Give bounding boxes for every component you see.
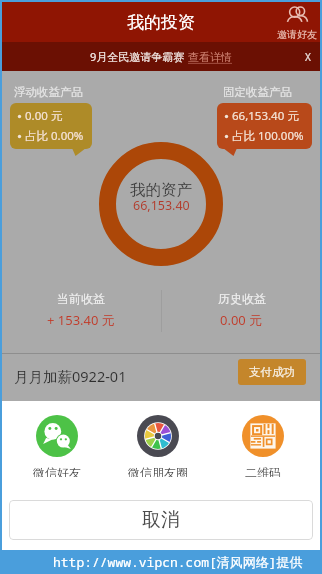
button[interactable]: 微信好友 bbox=[20, 415, 94, 477]
staticText: 浮动收益产品 bbox=[14, 85, 83, 99]
staticText: X bbox=[305, 50, 311, 64]
staticText: 二维码 bbox=[245, 465, 281, 477]
staticText: 固定收益产品 bbox=[223, 85, 292, 99]
staticText: 当前收益 bbox=[57, 291, 105, 306]
button[interactable]: 月月加薪0922-01 bbox=[0, 354, 322, 397]
staticText: 支付成功 bbox=[249, 365, 295, 379]
staticText: 占比 100.00% bbox=[232, 128, 304, 144]
staticText: 历史收益 bbox=[218, 291, 266, 306]
button[interactable]: 微信朋友圈 bbox=[121, 415, 195, 477]
staticText: 月月加薪0922-01 bbox=[14, 366, 127, 386]
button[interactable]: 9月全民邀请争霸赛 bbox=[0, 42, 322, 71]
staticText: 微信朋友圈 bbox=[128, 465, 188, 477]
staticText: 0.00 元 bbox=[220, 311, 263, 329]
staticText: 我的投资 bbox=[127, 12, 195, 33]
staticText: 取消 bbox=[142, 508, 180, 532]
button[interactable]: 支付成功 bbox=[238, 359, 306, 385]
button[interactable]: 取消 bbox=[9, 500, 313, 540]
staticText: 微信好友 bbox=[33, 465, 81, 477]
staticText: http://www.vipcn.com[清风网络]提供 bbox=[53, 553, 303, 571]
button[interactable]: 二维码 bbox=[226, 415, 300, 477]
staticText: 查看详情 bbox=[188, 50, 232, 64]
staticText: 0.00 元 bbox=[25, 108, 63, 124]
staticText: 占比 0.00% bbox=[25, 128, 84, 144]
staticText: 我的资产 bbox=[130, 180, 192, 200]
staticText: 66,153.40 bbox=[133, 197, 190, 214]
staticText: + 153.40 元 bbox=[47, 311, 115, 329]
button[interactable]: 关闭 bbox=[302, 50, 314, 64]
button[interactable]: 邀请好友 bbox=[277, 6, 317, 41]
staticText: 邀请好友 bbox=[277, 28, 317, 41]
staticText: 9月全民邀请争霸赛 bbox=[90, 49, 188, 64]
staticText: 66,153.40 元 bbox=[232, 108, 299, 124]
